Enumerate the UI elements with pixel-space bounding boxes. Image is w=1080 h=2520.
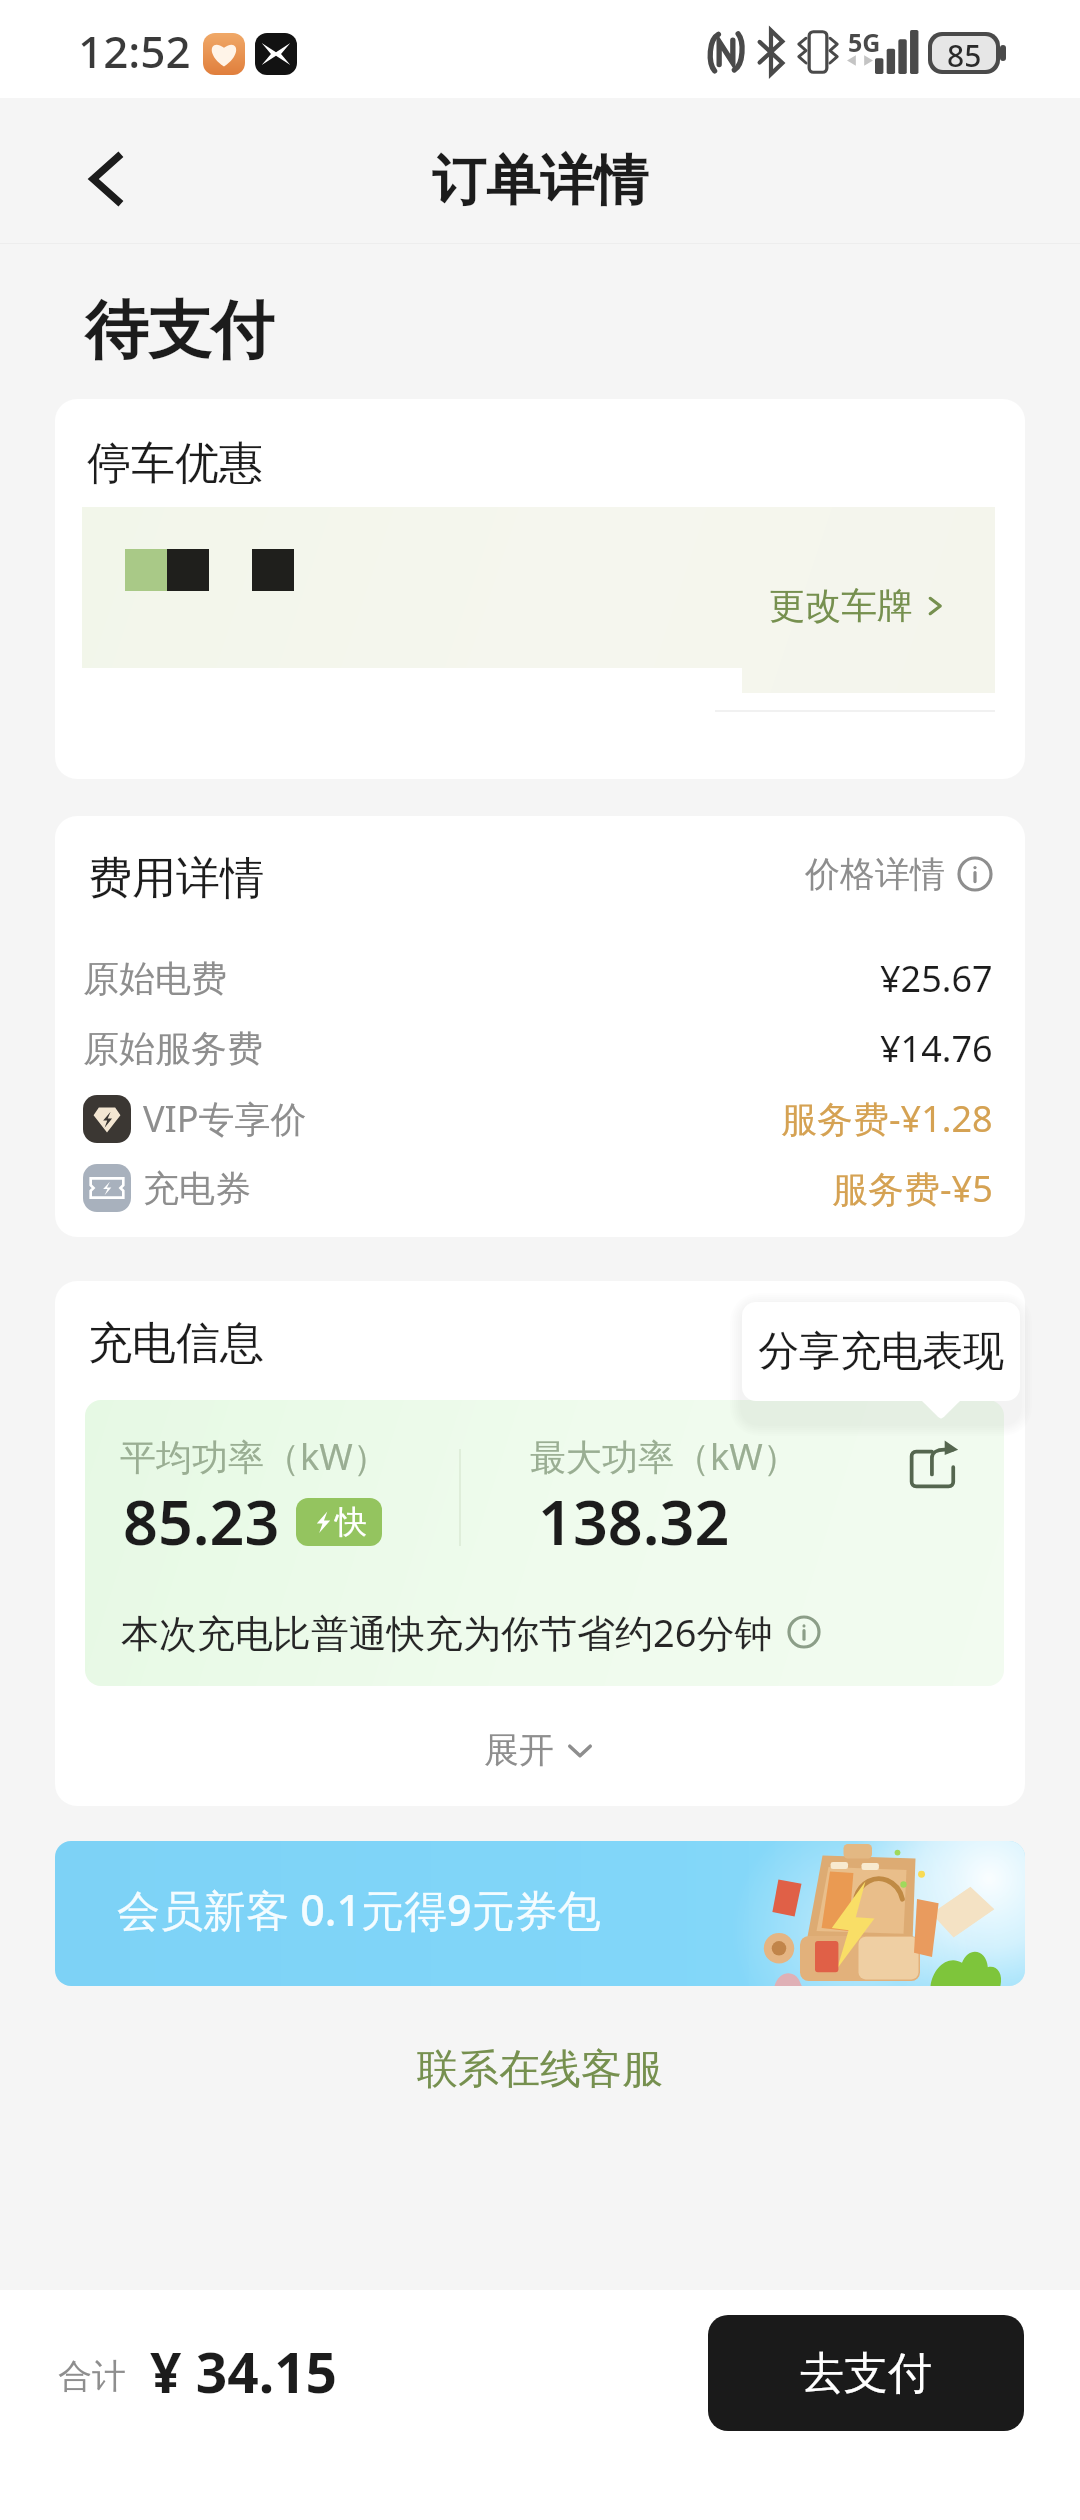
button[interactable]: VIP专享价 bbox=[55, 1083, 1025, 1153]
staticText: 85 bbox=[947, 36, 982, 69]
staticText: 停车优惠 bbox=[87, 436, 263, 491]
staticText: 订单详情 bbox=[432, 147, 648, 215]
staticText: ¥14.76 bbox=[880, 1024, 993, 1073]
staticText: 服务费-¥5 bbox=[832, 1164, 993, 1213]
staticText: 5G bbox=[848, 25, 881, 59]
button[interactable]: Share bbox=[908, 1437, 960, 1489]
button[interactable]: 分享充电表现 bbox=[742, 1302, 1020, 1401]
button[interactable]: Back bbox=[68, 137, 152, 221]
button[interactable]: 联系在线客服 bbox=[397, 2034, 683, 2106]
button[interactable]: 价格详情 bbox=[805, 852, 993, 896]
staticText: 联系在线客服 bbox=[417, 2044, 663, 2096]
staticText: 分享充电表现 bbox=[758, 1326, 1004, 1378]
staticText: 快 bbox=[335, 1502, 367, 1542]
staticText: 138.32 bbox=[538, 1480, 730, 1563]
staticText: 会员新客 0.1元得9元券包 bbox=[117, 1880, 601, 1939]
staticText: 平均功率（kW） bbox=[120, 1432, 389, 1481]
staticText: 价格详情 bbox=[805, 852, 945, 896]
staticText: 12:52 bbox=[78, 21, 191, 81]
staticText: 充电券 bbox=[143, 1166, 251, 1211]
staticText: VIP专享价 bbox=[143, 1094, 307, 1143]
staticText: 待支付 bbox=[85, 291, 274, 370]
staticText: 展开 bbox=[484, 1728, 554, 1772]
staticText: 费用详情 bbox=[88, 851, 264, 906]
staticText: 最大功率（kW） bbox=[530, 1432, 799, 1481]
staticText: 本次充电比普通快充为你节省约26分钟 bbox=[121, 1606, 773, 1658]
button[interactable]: 会员新客 0.1元得9元券包 bbox=[55, 1841, 1025, 1986]
button[interactable]: 展开 bbox=[484, 1728, 596, 1772]
button[interactable]: 充电券 bbox=[55, 1153, 1025, 1223]
staticText: 服务费-¥1.28 bbox=[781, 1094, 993, 1143]
staticText: 充电信息 bbox=[88, 1316, 264, 1371]
staticText: ¥25.67 bbox=[880, 954, 993, 1003]
button[interactable]: 更改车牌 bbox=[769, 583, 947, 628]
staticText: 原始服务费 bbox=[83, 1026, 263, 1071]
staticText: 合计 bbox=[58, 2355, 126, 2398]
button[interactable]: 去支付 bbox=[708, 2315, 1024, 2431]
staticText: 85.23 bbox=[123, 1480, 280, 1563]
staticText: ¥ 34.15 bbox=[150, 2334, 338, 2409]
staticText: 原始电费 bbox=[83, 956, 227, 1001]
staticText: 去支付 bbox=[800, 2346, 932, 2401]
staticText: 更改车牌 bbox=[769, 583, 913, 628]
